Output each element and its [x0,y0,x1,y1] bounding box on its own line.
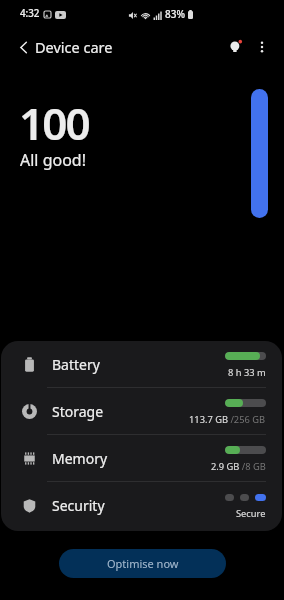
staticText: Security [52,496,105,515]
staticText: Optimise now [107,556,179,571]
staticText: 100 [19,93,89,153]
staticText: Memory [52,449,108,468]
staticText: Battery [52,355,100,374]
button[interactable]: Memory [1,435,282,481]
staticText: Storage [52,402,104,421]
staticText: 83% [165,7,185,21]
staticText: 2.9 GB /8 GB [211,460,266,473]
button[interactable]: Battery [1,341,282,387]
button[interactable]: Tips [221,33,249,61]
button[interactable]: Storage [1,388,282,434]
button[interactable]: Optimise now [59,549,226,578]
staticText: 4:32 [20,7,40,20]
staticText: 113.7 GB /256 GB [189,413,266,426]
staticText: Secure [236,507,266,520]
staticText: Device care [35,37,113,57]
staticText: 8 h 33 m [228,366,266,379]
button[interactable]: More options [248,33,276,61]
staticText: All good! [20,149,86,171]
button[interactable]: Back [9,33,37,61]
button[interactable]: Security [1,482,282,528]
